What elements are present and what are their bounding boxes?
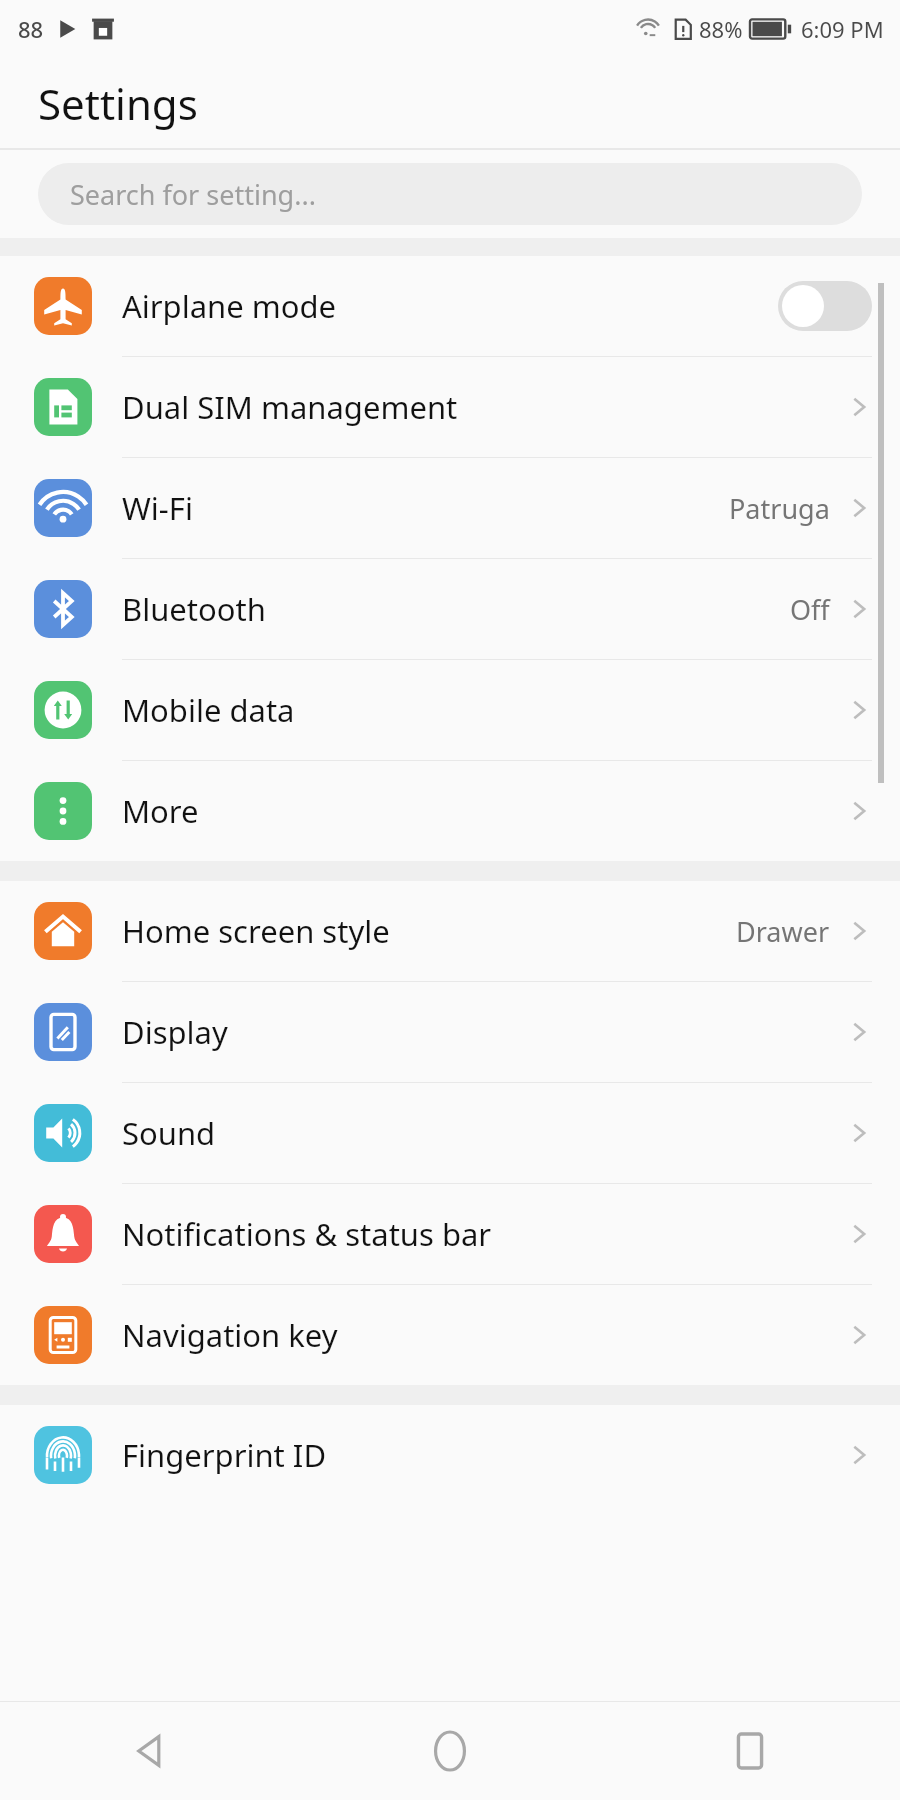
staticText: 6:09 PM — [801, 14, 884, 44]
staticText: Display — [122, 1011, 846, 1053]
staticText: Off — [790, 591, 830, 628]
staticText: Airplane mode — [122, 285, 778, 327]
staticText: Home screen style — [122, 910, 736, 952]
staticText: 88% — [699, 14, 743, 44]
button[interactable]: Back — [0, 1702, 300, 1800]
button[interactable]: Search for setting... — [38, 163, 862, 225]
staticText: More — [122, 790, 846, 832]
button[interactable]: Home screen style — [0, 881, 900, 982]
staticText: Patruga — [729, 490, 830, 527]
staticText: Navigation key — [122, 1314, 846, 1356]
staticText: Dual SIM management — [122, 386, 846, 428]
staticText: Sound — [122, 1112, 846, 1154]
staticText: Notifications & status bar — [122, 1213, 846, 1255]
button[interactable]: More — [0, 761, 900, 861]
button[interactable]: Navigation key — [0, 1285, 900, 1385]
staticText: Wi-Fi — [122, 487, 729, 529]
staticText: Mobile data — [122, 689, 846, 731]
button[interactable]: Airplane mode — [0, 256, 900, 357]
button[interactable]: Mobile data — [0, 660, 900, 761]
button[interactable]: Bluetooth — [0, 559, 900, 660]
staticText: 88 — [18, 14, 44, 44]
button[interactable]: Recents — [600, 1702, 900, 1800]
button[interactable]: Wi-Fi — [0, 458, 900, 559]
staticText: Search for setting... — [70, 176, 316, 213]
button[interactable]: Fingerprint ID — [0, 1405, 900, 1505]
staticText: Drawer — [736, 913, 830, 950]
button[interactable]: Notifications & status bar — [0, 1184, 900, 1285]
staticText: Fingerprint ID — [122, 1434, 846, 1476]
staticText: Settings — [38, 75, 198, 132]
button[interactable]: Home — [300, 1702, 600, 1800]
button[interactable]: Display — [0, 982, 900, 1083]
button[interactable]: Sound — [0, 1083, 900, 1184]
button[interactable]: Airplane mode toggle, off — [778, 281, 872, 331]
staticText: Bluetooth — [122, 588, 790, 630]
button[interactable]: Dual SIM management — [0, 357, 900, 458]
